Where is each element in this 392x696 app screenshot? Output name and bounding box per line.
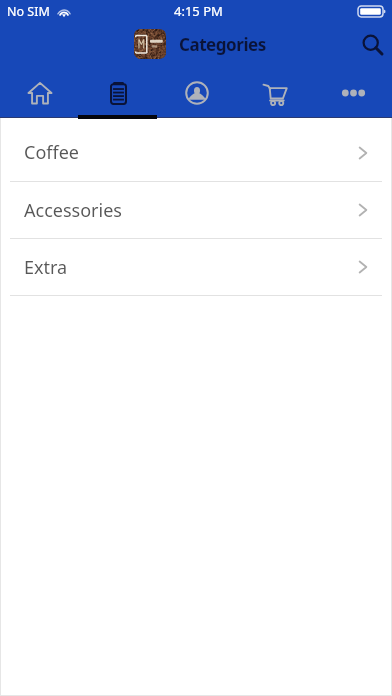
staticText: 4:15 PM xyxy=(174,2,223,20)
button[interactable]: Accessories xyxy=(0,182,392,239)
button[interactable]: Search xyxy=(356,29,388,61)
staticText: Coffee xyxy=(24,140,79,165)
staticText: No SIM xyxy=(7,3,50,20)
button[interactable]: Extra xyxy=(0,239,392,296)
staticText: Extra xyxy=(24,255,68,280)
staticText: Accessories xyxy=(24,198,122,223)
button[interactable]: Profile xyxy=(158,67,236,117)
button[interactable]: Cart xyxy=(236,67,314,117)
staticText: Categories xyxy=(179,33,266,56)
button[interactable]: Home xyxy=(0,67,79,117)
button[interactable]: Categories xyxy=(79,67,158,117)
button[interactable]: Coffee xyxy=(0,124,392,182)
button[interactable]: More xyxy=(314,67,392,117)
